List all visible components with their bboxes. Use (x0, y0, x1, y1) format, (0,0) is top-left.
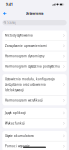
staticText: Wykaz funkcji (5, 121, 25, 125)
staticText: Metody szyfrowania (5, 33, 33, 37)
button[interactable]: Zarządzanie uprawnieniami (2, 41, 67, 51)
staticText: Szukaj (7, 21, 16, 24)
staticText: 9:41 (6, 2, 13, 7)
staticText: Ustawienia modułu, konfiguracja (5, 77, 55, 81)
staticText: zarządzania oraz ustawienia (5, 83, 46, 86)
button[interactable]: Ustawienia modułu, konfiguracja (2, 74, 67, 95)
staticText: Harmonogram weryfikacji (5, 98, 43, 102)
staticText: Użycie akumulatora (5, 134, 34, 138)
staticText: Harmonogram czyszczenia podsystemu (5, 65, 60, 68)
button[interactable]: Harmonogram czyszczenia podsystemu (2, 61, 67, 71)
staticText: (de)aktywacji (5, 88, 24, 92)
button[interactable]: Harmonogram dynamiczny (2, 51, 67, 61)
staticText: Pomoc i wsparcie (5, 144, 30, 148)
staticText: Zarządzanie uprawnieniami (5, 44, 47, 48)
staticText: Język aplikacji (5, 111, 26, 115)
button[interactable]: Szukaj (2, 20, 67, 25)
button[interactable]: Język aplikacji (2, 108, 67, 118)
button[interactable]: Metody szyfrowania (2, 30, 67, 41)
button[interactable]: Użycie akumulatora (2, 131, 67, 141)
button[interactable]: Pomoc i wsparcie (2, 141, 67, 150)
button[interactable]: Wstecz (0, 10, 9, 17)
button[interactable]: Wykaz funkcji (2, 118, 67, 128)
staticText: Ustawienia (25, 11, 43, 16)
button[interactable]: Harmonogram weryfikacji (2, 95, 67, 105)
staticText: Harmonogram dynamiczny (5, 54, 44, 58)
